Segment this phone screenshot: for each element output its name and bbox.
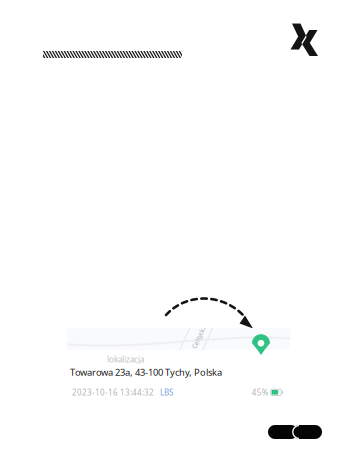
button[interactable]: Brand logo: [290, 22, 319, 58]
button[interactable]: Next: [292, 425, 322, 439]
staticText: LBS: [154, 387, 173, 398]
staticText: 45%: [252, 387, 271, 398]
button[interactable]: Previous: [268, 425, 298, 439]
staticText: lokalizacja: [107, 354, 144, 365]
staticText: Celtycka: [186, 332, 212, 341]
button[interactable]: Celtycka: [67, 328, 290, 403]
staticText: Towarowa 23a, 43-100 Tychy, Polska: [70, 366, 222, 378]
staticText: 2023-10-16 13:44:32: [72, 387, 154, 398]
